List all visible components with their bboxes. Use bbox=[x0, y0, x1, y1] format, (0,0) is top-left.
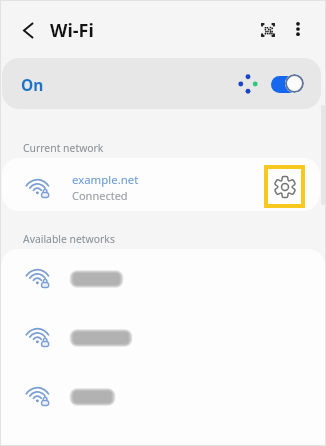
button[interactable]: Navigate up bbox=[13, 15, 43, 45]
button[interactable] bbox=[1, 367, 325, 426]
button[interactable] bbox=[1, 308, 325, 367]
staticText: Available networks bbox=[23, 232, 115, 246]
staticText: Wi-Fi bbox=[50, 18, 94, 43]
staticText: Current network bbox=[23, 141, 104, 155]
button[interactable]: More options bbox=[285, 16, 311, 42]
button[interactable]: On bbox=[2, 58, 321, 109]
button[interactable]: Scan QR code bbox=[254, 16, 282, 44]
button[interactable]: example.net bbox=[2, 158, 320, 211]
staticText: On bbox=[21, 74, 44, 95]
button[interactable]: Wi-Fi on bbox=[271, 74, 304, 93]
staticText: Connected bbox=[72, 188, 128, 203]
button[interactable]: Network settings bbox=[264, 165, 305, 208]
staticText: example.net bbox=[72, 172, 139, 188]
button[interactable] bbox=[1, 249, 325, 308]
